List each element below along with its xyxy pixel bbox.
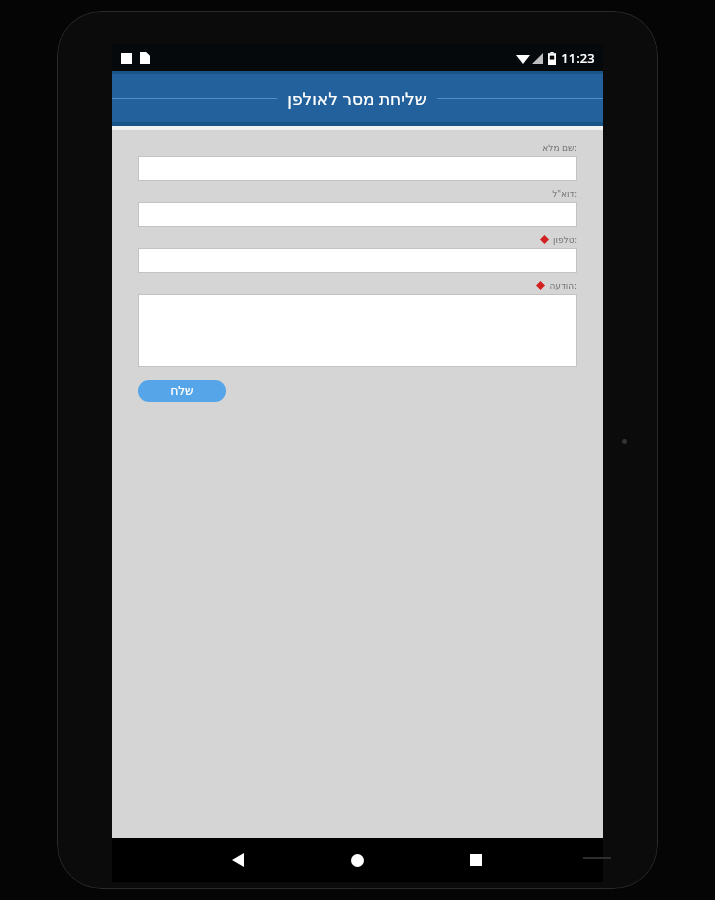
button[interactable]: Home bbox=[337, 840, 377, 880]
button[interactable]: Back bbox=[218, 840, 258, 880]
button[interactable] bbox=[138, 202, 577, 227]
staticText: דוא"ל: bbox=[552, 187, 577, 199]
staticText: שליחת מסר לאולפן bbox=[287, 87, 427, 110]
button[interactable] bbox=[138, 156, 577, 181]
button[interactable] bbox=[138, 248, 577, 273]
staticText: הודעה: bbox=[549, 279, 577, 291]
staticText: שם מלא: bbox=[542, 141, 577, 153]
staticText: טלפון: bbox=[553, 233, 577, 245]
staticText: שלח bbox=[170, 384, 194, 398]
staticText: 11:23 bbox=[561, 49, 595, 67]
button[interactable]: שלח bbox=[138, 380, 226, 402]
button[interactable] bbox=[138, 294, 577, 367]
button[interactable]: Recent apps bbox=[456, 840, 496, 880]
